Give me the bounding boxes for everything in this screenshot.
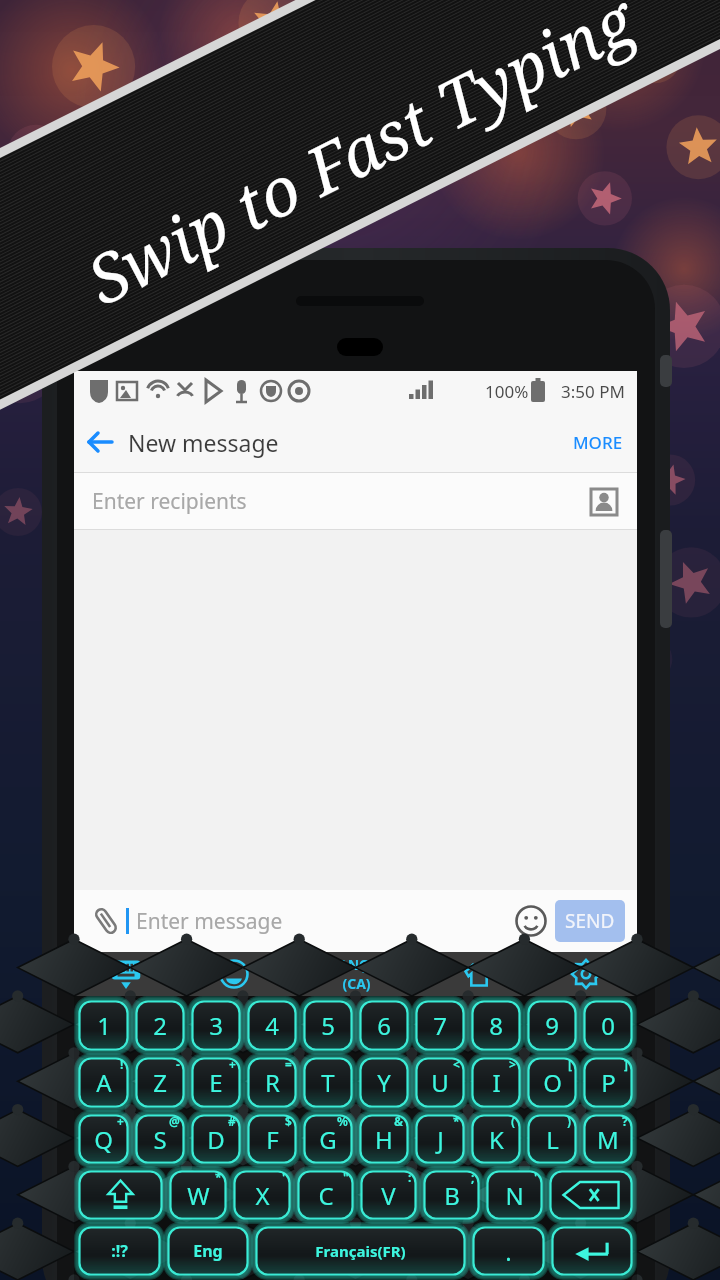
staticText: '	[534, 1169, 538, 1185]
staticText: [	[568, 1056, 572, 1072]
button[interactable]: O	[526, 1056, 578, 1109]
button[interactable]: F	[246, 1113, 298, 1165]
button[interactable]: X	[232, 1169, 292, 1221]
button[interactable]: 8	[470, 999, 522, 1052]
button[interactable]: D	[190, 1113, 242, 1165]
staticText: C	[318, 1179, 334, 1212]
staticText: 8	[489, 1009, 503, 1042]
button[interactable]	[77, 1169, 164, 1221]
button[interactable]: N	[485, 1169, 544, 1221]
staticText: Y	[377, 1066, 391, 1099]
staticText: Enter recipients	[92, 487, 247, 516]
staticText: 6	[377, 1009, 391, 1042]
button[interactable]: W	[168, 1169, 228, 1221]
button[interactable]: C	[296, 1169, 355, 1221]
button[interactable]: A	[77, 1056, 130, 1109]
staticText: MORE	[573, 431, 623, 454]
staticText: 3	[209, 1009, 223, 1042]
staticText: N	[505, 1179, 524, 1212]
button[interactable]: 4	[246, 999, 298, 1052]
staticText: (CA)	[342, 974, 371, 993]
staticText: 100%	[485, 380, 529, 403]
button[interactable]: Themes	[427, 952, 530, 996]
button[interactable]: Keyboard	[74, 952, 178, 996]
button[interactable]: 2	[134, 999, 186, 1052]
button[interactable]: R	[246, 1056, 298, 1109]
button[interactable]	[550, 1225, 634, 1277]
button[interactable]: V	[359, 1169, 418, 1221]
button[interactable]: S	[134, 1113, 186, 1165]
button[interactable]: 6	[358, 999, 410, 1052]
button[interactable]: K	[470, 1113, 522, 1165]
button[interactable]: Emoji	[509, 899, 553, 943]
button[interactable]: Eng	[166, 1225, 250, 1277]
button[interactable]: P	[582, 1056, 634, 1109]
button[interactable]: G	[302, 1113, 354, 1165]
staticText: L	[546, 1123, 559, 1156]
button[interactable]: 5	[302, 999, 354, 1052]
button[interactable]: M	[582, 1113, 634, 1165]
staticText: ?	[622, 1113, 628, 1129]
button[interactable]: L	[526, 1113, 578, 1165]
button[interactable]: .	[471, 1225, 546, 1277]
staticText: FRANÇAIS	[321, 955, 391, 974]
staticText: )	[567, 1113, 572, 1129]
button[interactable]: Back	[74, 416, 126, 468]
button[interactable]: J	[414, 1113, 466, 1165]
staticText: R	[265, 1066, 280, 1099]
staticText: %	[337, 1113, 348, 1129]
button[interactable]: I	[470, 1056, 522, 1109]
staticText: S	[153, 1123, 167, 1156]
staticText: K	[489, 1123, 504, 1156]
button[interactable]: T	[302, 1056, 354, 1109]
button[interactable]	[548, 1169, 634, 1221]
staticText: F	[266, 1123, 279, 1156]
button[interactable]: Français(FR)	[254, 1225, 467, 1277]
staticText: I	[492, 1066, 501, 1099]
staticText: Enter message	[136, 907, 283, 936]
staticText: 3:50 PM	[561, 380, 625, 403]
button[interactable]: 7	[414, 999, 466, 1052]
staticText: <	[453, 1056, 460, 1072]
button[interactable]: Y	[358, 1056, 410, 1109]
staticText: 5	[321, 1009, 335, 1042]
button[interactable]: E	[190, 1056, 242, 1109]
staticText: 2	[153, 1009, 167, 1042]
staticText: Z	[153, 1066, 167, 1099]
button[interactable]: Q	[77, 1113, 130, 1165]
staticText: 7	[433, 1009, 447, 1042]
button[interactable]: 0	[582, 999, 634, 1052]
staticText: ;	[471, 1169, 475, 1185]
button[interactable]: H	[358, 1113, 410, 1165]
button[interactable]: Settings	[534, 952, 637, 996]
staticText: 1	[97, 1009, 111, 1042]
staticText: P	[601, 1066, 616, 1099]
button[interactable]: 9	[526, 999, 578, 1052]
button[interactable]: FRANÇAIS	[289, 952, 423, 996]
button[interactable]: Emoji	[182, 952, 285, 996]
staticText: H	[375, 1123, 393, 1156]
button[interactable]: 3	[190, 999, 242, 1052]
button[interactable]: MORE	[559, 411, 637, 473]
staticText: 0	[601, 1009, 615, 1042]
button[interactable]: Z	[134, 1056, 186, 1109]
button[interactable]: U	[414, 1056, 466, 1109]
button[interactable]: Pick contact	[585, 483, 623, 521]
staticText: $	[285, 1113, 292, 1129]
button[interactable]: 1	[77, 999, 130, 1052]
button[interactable]: SEND	[555, 900, 625, 942]
button[interactable]: Attach	[86, 901, 126, 941]
button[interactable]: B	[422, 1169, 481, 1221]
staticText: B	[444, 1179, 460, 1212]
staticText: J	[437, 1123, 444, 1156]
staticText: >	[509, 1056, 516, 1072]
staticText: Q	[94, 1123, 113, 1156]
staticText: !	[120, 1056, 124, 1072]
staticText: 9	[545, 1009, 559, 1042]
button[interactable]: :!?	[77, 1225, 162, 1277]
staticText: Eng	[193, 1240, 223, 1262]
staticText: E	[209, 1066, 223, 1099]
staticText: Swip to Fast Typing	[30, 0, 690, 344]
staticText: SEND	[565, 908, 615, 934]
staticText: W	[187, 1179, 210, 1212]
